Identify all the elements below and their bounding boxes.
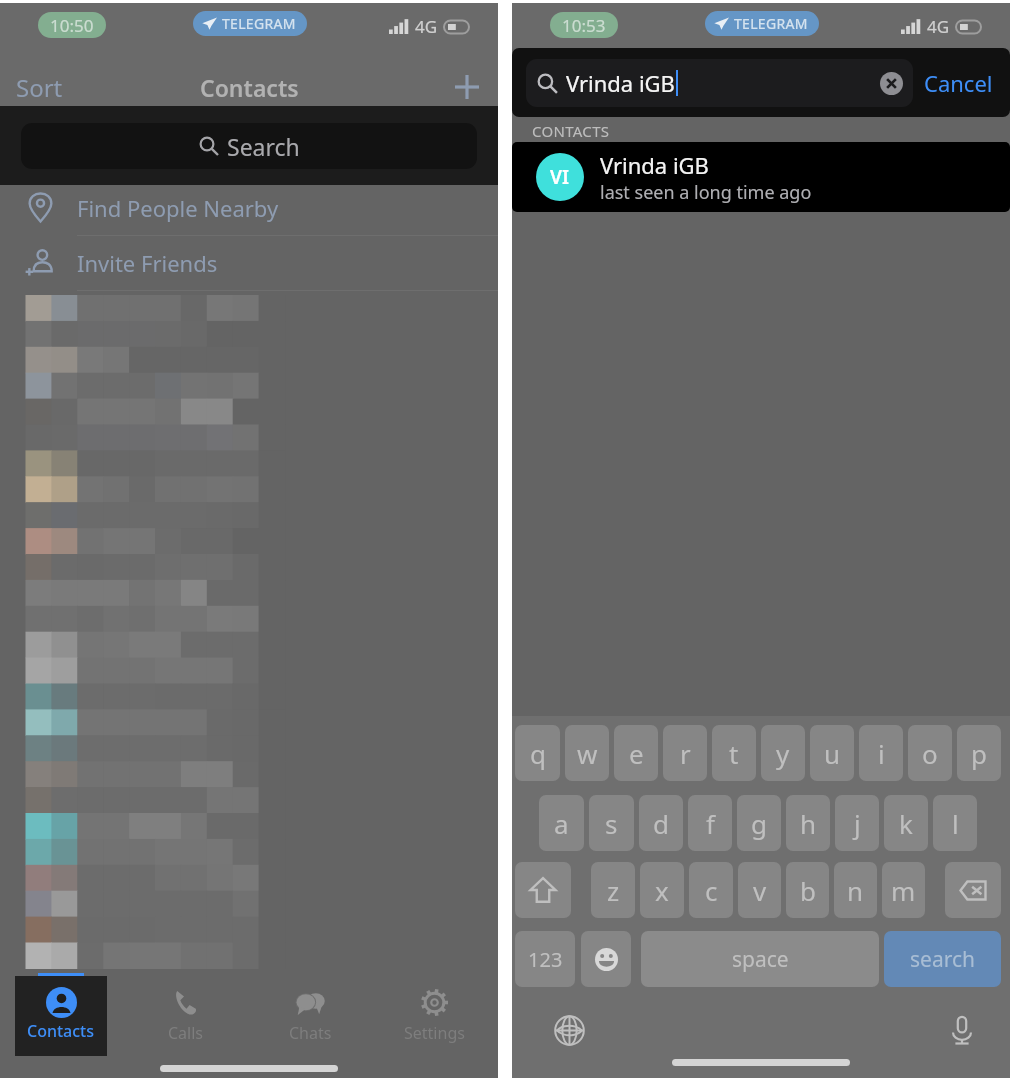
staticText: Contacts (200, 72, 299, 103)
button[interactable]: 123 (515, 931, 575, 987)
button[interactable]: Invite Friends (0, 235, 498, 290)
staticText: k (899, 806, 913, 841)
staticText: u (824, 736, 841, 771)
button[interactable]: space (641, 931, 879, 987)
button[interactable]: a (539, 795, 584, 851)
button[interactable]: Voice input (943, 1011, 981, 1049)
button[interactable]: Calls (140, 976, 232, 1056)
button[interactable]: l (933, 795, 977, 851)
staticText: t (729, 736, 739, 771)
staticText: Contacts (27, 1020, 95, 1042)
staticText: Calls (168, 1022, 204, 1044)
button[interactable]: r (663, 725, 707, 781)
button[interactable]: n (834, 862, 877, 918)
button[interactable]: Add contact (450, 70, 484, 104)
staticText: Settings (404, 1022, 465, 1044)
button[interactable]: VI (536, 142, 1010, 212)
button[interactable]: b (786, 862, 829, 918)
staticText: TELEGRAM (734, 14, 808, 33)
staticText: m (891, 873, 916, 908)
staticText: n (847, 873, 864, 908)
button[interactable]: x (640, 862, 684, 918)
button[interactable]: d (639, 795, 683, 851)
staticText: i (878, 736, 885, 771)
button[interactable]: u (810, 725, 854, 781)
staticText: x (655, 873, 669, 908)
button[interactable]: j (835, 795, 879, 851)
staticText: VI (550, 164, 570, 190)
staticText: p (971, 736, 987, 771)
button[interactable]: g (737, 795, 781, 851)
button[interactable]: Backspace (945, 862, 1001, 918)
staticText: h (800, 806, 817, 841)
staticText: y (776, 736, 790, 771)
button[interactable]: Shift (515, 862, 571, 918)
button[interactable]: e (614, 725, 658, 781)
staticText: 10:50 (50, 14, 94, 37)
staticText: d (653, 806, 669, 841)
staticText: l (952, 806, 959, 841)
staticText: 4G (415, 15, 438, 38)
button[interactable]: i (859, 725, 903, 781)
staticText: e (629, 736, 644, 771)
button[interactable]: k (884, 795, 928, 851)
button[interactable]: w (565, 725, 609, 781)
button[interactable]: Cancel (924, 68, 993, 98)
staticText: o (922, 736, 938, 771)
staticText: j (854, 806, 861, 841)
button[interactable]: v (738, 862, 781, 918)
staticText: Invite Friends (77, 248, 218, 278)
staticText: r (680, 736, 691, 771)
staticText: c (705, 873, 718, 908)
staticText: Vrinda iGB (600, 150, 709, 180)
staticText: s (605, 806, 618, 841)
button[interactable]: o (908, 725, 952, 781)
button[interactable]: Contacts (15, 976, 107, 1056)
staticText: q (530, 736, 546, 771)
button[interactable]: y (761, 725, 805, 781)
staticText: search (910, 945, 975, 974)
staticText: Search (227, 131, 300, 162)
staticText: Chats (289, 1022, 332, 1044)
button[interactable]: m (882, 862, 925, 918)
staticText: f (706, 806, 715, 841)
staticText: Sort (16, 71, 63, 104)
button[interactable]: c (689, 862, 733, 918)
button[interactable]: search (884, 931, 1001, 987)
staticText: Find People Nearby (77, 193, 279, 223)
staticText: w (577, 736, 598, 771)
staticText: Vrinda iGB (566, 68, 675, 98)
button[interactable]: p (957, 725, 1001, 781)
button[interactable]: f (688, 795, 732, 851)
staticText: Cancel (924, 68, 993, 98)
button[interactable]: s (589, 795, 634, 851)
staticText: 4G (927, 15, 950, 38)
staticText: b (800, 873, 816, 908)
button[interactable]: Vrinda iGB (526, 48, 1004, 117)
staticText: CONTACTS (532, 121, 610, 141)
button[interactable]: Chats (264, 976, 356, 1056)
button[interactable]: q (515, 725, 560, 781)
button[interactable]: Settings (388, 976, 480, 1056)
button[interactable]: Find People Nearby (0, 180, 498, 235)
button[interactable]: Sort (16, 71, 63, 104)
staticText: 10:53 (562, 14, 606, 37)
staticText: last seen a long time ago (600, 180, 812, 205)
button[interactable]: h (786, 795, 830, 851)
button[interactable]: Change keyboard (550, 1011, 588, 1049)
staticText: v (753, 873, 767, 908)
button[interactable]: z (591, 862, 635, 918)
staticText: space (732, 945, 789, 974)
staticText: TELEGRAM (222, 14, 296, 33)
button[interactable]: Emoji (581, 931, 631, 987)
button[interactable]: t (712, 725, 756, 781)
staticText: z (607, 873, 620, 908)
button[interactable]: Search (0, 106, 498, 185)
staticText: g (751, 806, 767, 841)
staticText: 123 (528, 946, 563, 973)
staticText: a (554, 806, 569, 841)
